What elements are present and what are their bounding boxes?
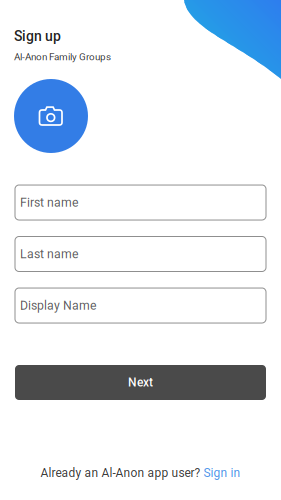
staticText: First name [20, 195, 79, 210]
staticText: Al-Anon Family Groups [14, 51, 111, 63]
staticText: Display Name [20, 298, 97, 313]
button[interactable]: Display Name [15, 288, 266, 323]
button[interactable]: Next [15, 365, 266, 400]
button[interactable]: Sign in [203, 466, 240, 480]
staticText: Next [128, 375, 153, 390]
staticText: Sign in [203, 466, 240, 480]
staticText: Sign up [14, 28, 61, 44]
button[interactable]: Last name [15, 236, 266, 271]
staticText: Last name [20, 247, 79, 261]
button[interactable]: Add profile photo [14, 79, 88, 153]
staticText: Already an Al-Anon app user? [40, 466, 200, 480]
button[interactable]: First name [15, 185, 266, 220]
